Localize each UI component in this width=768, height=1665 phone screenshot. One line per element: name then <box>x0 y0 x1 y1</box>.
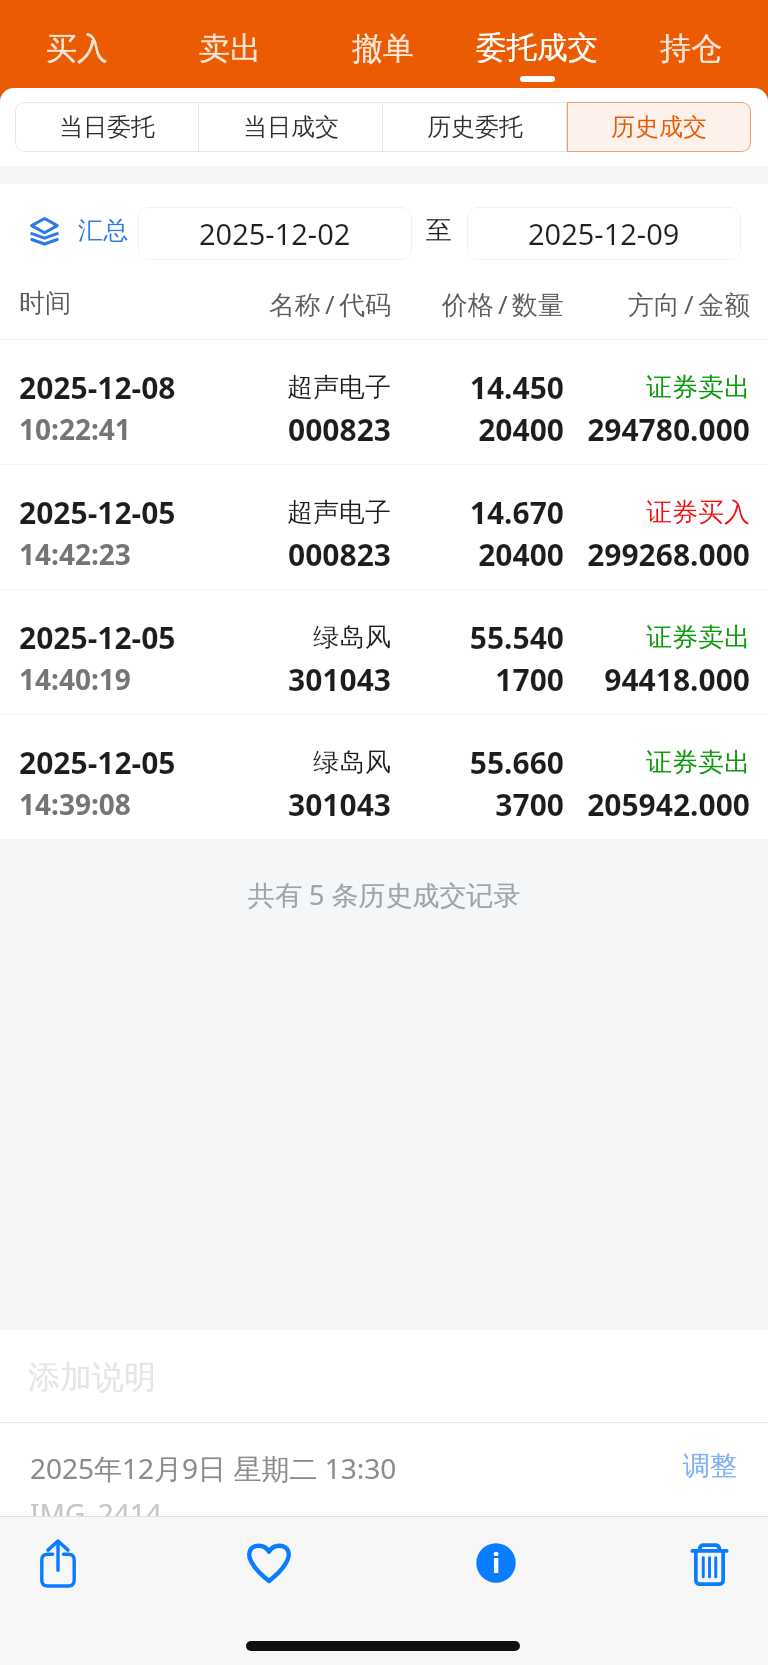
button[interactable]: Info <box>474 1530 518 1596</box>
staticText: 2025-12-08 <box>19 367 176 408</box>
button[interactable]: 汇总 <box>14 198 72 256</box>
button[interactable]: 委托成交 <box>460 0 614 88</box>
staticText: 当日委托 <box>59 112 155 142</box>
staticText: 14.670 <box>391 492 564 533</box>
button[interactable]: 2025-12-05 <box>0 465 768 589</box>
staticText: 证券买入 <box>564 496 750 529</box>
staticText: 价格 / 数量 <box>391 286 564 322</box>
staticText: 94418.000 <box>564 659 750 700</box>
staticText: 绿岛风 <box>220 746 391 779</box>
staticText: 当日成交 <box>243 112 339 142</box>
staticText: i <box>492 1544 501 1581</box>
staticText: 000823 <box>220 534 391 575</box>
staticText: 14:39:08 <box>19 785 131 823</box>
staticText: 持仓 <box>660 29 722 68</box>
button[interactable]: 撤单 <box>306 0 460 88</box>
staticText: 55.660 <box>391 742 564 783</box>
staticText: 299268.000 <box>564 534 750 575</box>
staticText: 调整 <box>683 1449 737 1483</box>
staticText: 2025-12-05 <box>19 492 176 533</box>
staticText: 000823 <box>220 409 391 450</box>
staticText: 名称 / 代码 <box>220 286 391 322</box>
staticText: 时间 <box>19 287 71 320</box>
staticText: 委托成交 <box>476 29 598 67</box>
button[interactable]: 历史成交 <box>567 102 751 152</box>
staticText: 证券卖出 <box>564 621 750 654</box>
staticText: 历史成交 <box>611 112 707 142</box>
staticText: 14.450 <box>391 367 564 408</box>
staticText: 10:22:41 <box>19 410 131 448</box>
staticText: 1700 <box>391 659 564 700</box>
button[interactable]: 2025-12-02 <box>138 207 412 260</box>
staticText: 证券卖出 <box>564 746 750 779</box>
staticText: 2025-12-05 <box>19 617 176 658</box>
staticText: 294780.000 <box>564 409 750 450</box>
button[interactable]: 当日委托 <box>15 102 199 152</box>
staticText: 添加说明 <box>28 1357 156 1397</box>
button[interactable]: 持仓 <box>614 0 768 88</box>
button[interactable]: 历史委托 <box>383 102 567 152</box>
staticText: 301043 <box>220 784 391 825</box>
button[interactable]: 当日成交 <box>199 102 383 152</box>
staticText: IMG_2414 <box>30 1494 162 1532</box>
staticText: 买入 <box>46 29 108 68</box>
button[interactable]: 2025-12-09 <box>467 207 741 260</box>
staticText: 2025-12-05 <box>19 742 176 783</box>
staticText: 20400 <box>391 409 564 450</box>
staticText: 3700 <box>391 784 564 825</box>
staticText: 2025年12月9日 星期二 13:30 <box>30 1449 397 1487</box>
staticText: 2025-12-09 <box>528 214 680 253</box>
button[interactable]: 卖出 <box>153 0 306 88</box>
staticText: 301043 <box>220 659 391 700</box>
staticText: 14:40:19 <box>19 660 131 698</box>
button[interactable]: 2025-12-05 <box>0 715 768 839</box>
staticText: 卖出 <box>199 29 261 68</box>
button[interactable]: Delete <box>687 1530 731 1596</box>
staticText: 撤单 <box>352 29 414 68</box>
staticText: 历史委托 <box>427 112 523 142</box>
button[interactable]: 买入 <box>0 0 153 88</box>
button[interactable]: Favorite <box>247 1530 291 1596</box>
button[interactable]: Share <box>36 1530 80 1596</box>
staticText: 2025-12-02 <box>199 214 351 253</box>
staticText: 汇总 <box>78 215 128 246</box>
staticText: 超声电子 <box>220 371 391 404</box>
staticText: 205942.000 <box>564 784 750 825</box>
button[interactable]: 2025-12-05 <box>0 590 768 714</box>
staticText: 超声电子 <box>220 496 391 529</box>
button[interactable]: 2025-12-08 <box>0 340 768 464</box>
staticText: 55.540 <box>391 617 564 658</box>
staticText: 证券卖出 <box>564 371 750 404</box>
staticText: 至 <box>426 214 452 247</box>
staticText: 20400 <box>391 534 564 575</box>
staticText: 共有 5 条历史成交记录 <box>248 876 521 913</box>
staticText: 14:42:23 <box>19 535 131 573</box>
button[interactable]: 调整 <box>683 1449 737 1483</box>
staticText: 绿岛风 <box>220 621 391 654</box>
staticText: 方向 / 金额 <box>564 286 750 322</box>
